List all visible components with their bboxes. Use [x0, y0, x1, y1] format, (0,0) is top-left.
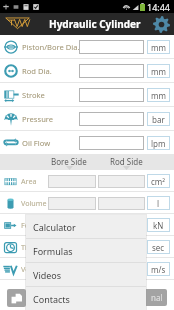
staticText: Oil Flow [22, 138, 51, 148]
button[interactable]: mm [147, 40, 170, 54]
staticText: cm² [151, 176, 166, 187]
button[interactable]: bar [147, 112, 170, 126]
button[interactable]: Documents [7, 289, 26, 307]
staticText: sec [152, 242, 165, 253]
button[interactable]: Bore Side [44, 155, 94, 170]
staticText: m/s [151, 264, 166, 275]
button[interactable]: Oil Flow value [79, 136, 144, 150]
staticText: mm [151, 90, 166, 101]
staticText: Rod Dia. [22, 66, 52, 76]
button[interactable]: Videos [26, 263, 146, 287]
button[interactable]: sec [147, 240, 170, 254]
button[interactable]: Stroke value [79, 88, 144, 102]
staticText: Hydraulic Cylinder [49, 17, 141, 31]
staticText: Contacts [33, 293, 70, 305]
button[interactable]: Rod Side [101, 155, 151, 170]
staticText: Stroke [22, 90, 45, 100]
staticText: mm [151, 66, 166, 77]
button[interactable]: m/s [147, 262, 170, 276]
button[interactable]: l [147, 196, 170, 210]
staticText: Formulas [33, 245, 73, 257]
staticText: Force [21, 220, 40, 230]
staticText: Rod Side [110, 156, 143, 167]
button[interactable]: Calculator [26, 215, 146, 239]
button[interactable]: More [141, 289, 167, 306]
staticText: Pressure [22, 114, 54, 124]
staticText: kN [153, 220, 164, 231]
button[interactable]: Rod Dia. value [79, 64, 144, 78]
staticText: lpm [151, 138, 166, 149]
button[interactable]: lpm [147, 136, 170, 150]
button[interactable]: mm [147, 88, 170, 102]
staticText: mm [151, 42, 166, 53]
staticText: Velocity [21, 264, 47, 274]
staticText: bar [152, 114, 165, 125]
button[interactable]: Piston/Bore Dia. value [79, 40, 144, 54]
staticText: Calculator [33, 221, 76, 233]
staticText: Time [21, 242, 38, 252]
button[interactable]: Formulas [26, 239, 146, 263]
button[interactable]: cm² [147, 174, 170, 188]
button[interactable]: Pressure value [79, 112, 144, 126]
button[interactable]: kN [147, 218, 170, 232]
button[interactable]: mm [147, 64, 170, 78]
staticText: nal [151, 292, 163, 303]
staticText: l [157, 198, 160, 209]
button[interactable]: Settings [151, 14, 172, 35]
button[interactable]: Contacts [26, 287, 146, 310]
staticText: Piston/Bore Dia. [22, 42, 80, 52]
staticText: 14:44 [147, 1, 171, 13]
staticText: Volume [21, 198, 47, 208]
staticText: Area [21, 176, 37, 186]
staticText: Videos [33, 269, 62, 281]
staticText: Bore Side [51, 156, 87, 167]
